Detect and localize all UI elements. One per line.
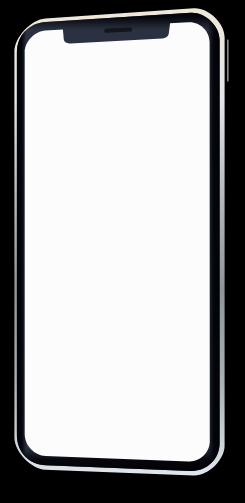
other: Smartphone mockup with blank screen	[0, 0, 245, 503]
